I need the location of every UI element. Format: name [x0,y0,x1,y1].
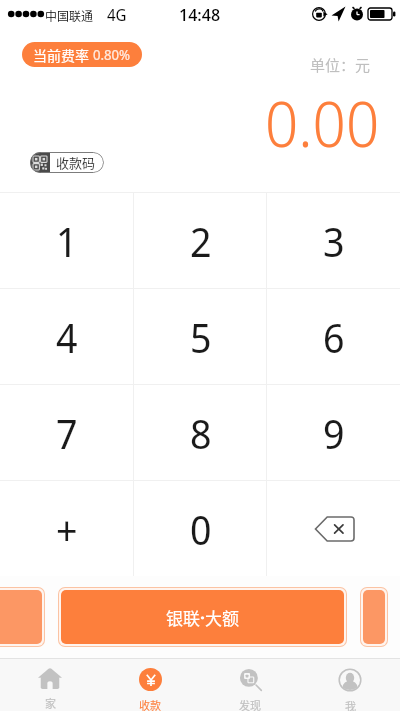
staticText: 银联 [166,605,200,630]
button[interactable] [0,590,42,644]
button[interactable]: 银联 [61,590,344,644]
button[interactable]: Delete [267,481,400,576]
staticText: 当前费率 [33,45,93,65]
button[interactable]: 7 [0,385,134,480]
staticText: 3 [323,214,345,268]
button[interactable]: 5 [134,289,267,384]
staticText: 9 [323,406,345,460]
button[interactable]: 发现 [200,659,300,711]
staticText: 0 [190,502,212,556]
other: 收款码 [33,156,47,170]
staticText: 6 [323,310,345,364]
staticText: 1 [56,214,78,268]
staticText: 大额 [205,605,239,630]
button[interactable]: + [0,481,134,576]
staticText: 5 [190,310,212,364]
button[interactable]: 6 [267,289,400,384]
staticText: 收款 [139,697,161,711]
button[interactable]: 3 [267,193,400,288]
button[interactable]: 4 [0,289,134,384]
button[interactable]: 我 [300,659,400,711]
button[interactable]: 8 [134,385,267,480]
button[interactable]: 9 [267,385,400,480]
staticText: 收款码 [56,153,96,172]
button[interactable]: 收款码 [30,152,104,173]
button[interactable]: 0 [134,481,267,576]
staticText: 0.80% [93,45,131,64]
staticText: 8 [190,406,212,460]
staticText: 4 [56,310,78,364]
staticText: 14:48 [179,3,221,26]
staticText: 我 [345,698,356,711]
other: Delete [314,516,354,542]
staticText: 发现 [239,697,261,711]
button[interactable]: 2 [134,193,267,288]
staticText: 0.00 [265,81,380,165]
button[interactable]: 家 [0,659,100,711]
staticText: 4G [107,4,127,26]
button[interactable] [363,590,385,644]
staticText: 单位：元 [310,54,371,76]
staticText: 2 [190,214,212,268]
staticText: 中国联通 [45,7,94,24]
staticText: 家 [45,695,56,711]
button[interactable]: 1 [0,193,134,288]
button[interactable]: 当前费率 [22,42,142,67]
staticText: 7 [56,406,78,460]
staticText: + [56,502,78,556]
button[interactable]: 收款 [100,659,200,711]
